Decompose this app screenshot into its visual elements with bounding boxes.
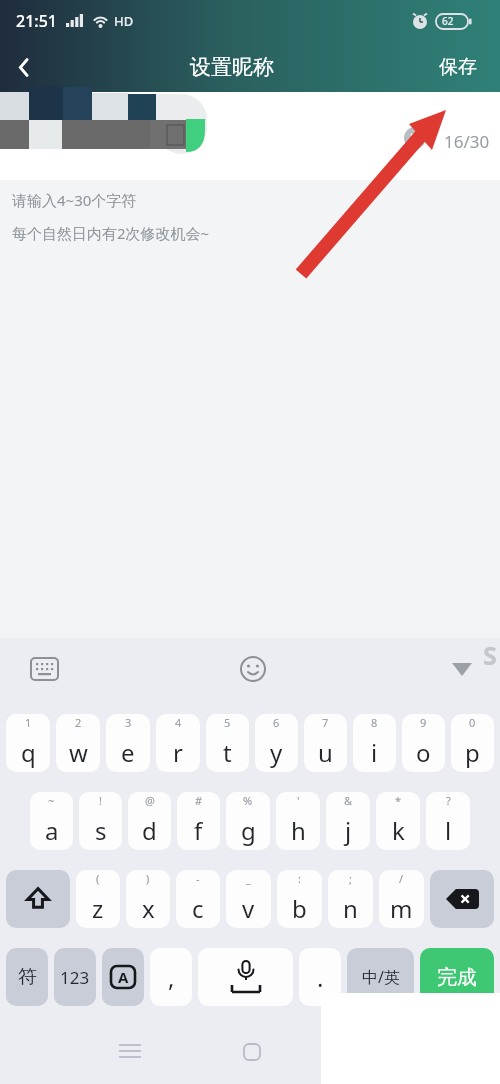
staticText: s (95, 814, 107, 847)
staticText: ? (446, 793, 451, 808)
button[interactable]: ! (79, 792, 122, 850)
button[interactable]: * (376, 792, 420, 850)
staticText: ' (297, 793, 300, 808)
staticText: 符 (18, 965, 37, 989)
staticText: 21:51 (16, 10, 57, 32)
button[interactable]: ? (426, 792, 470, 850)
button[interactable]: 3 (106, 714, 150, 772)
staticText: ) (146, 871, 150, 886)
staticText: 4 (175, 715, 182, 730)
staticText: 完成 (437, 965, 477, 990)
staticText: 每个自然日内有2次修改机会~ (12, 223, 210, 243)
button[interactable]: 7 (304, 714, 347, 772)
staticText: 保存 (439, 55, 477, 79)
button[interactable]: 完成 (420, 948, 494, 1006)
button[interactable] (430, 870, 494, 928)
staticText: A (118, 967, 129, 987)
staticText: 6 (273, 715, 280, 730)
staticText: z (92, 892, 104, 925)
staticText: * (395, 793, 402, 808)
staticText: 123 (60, 966, 90, 989)
button[interactable] (6, 870, 70, 928)
staticText: 5 (224, 715, 231, 730)
button[interactable]: 9 (402, 714, 445, 772)
button[interactable]: , (150, 948, 192, 1006)
button[interactable]: - (176, 870, 220, 928)
staticText: b (292, 892, 307, 925)
button[interactable]: 中/英 (347, 948, 414, 1006)
staticText: - (196, 871, 200, 886)
staticText: 62 (442, 14, 454, 28)
button[interactable]: ; (328, 870, 373, 928)
button[interactable] (404, 127, 426, 149)
staticText: x (142, 892, 155, 925)
button[interactable]: A (102, 948, 144, 1006)
button[interactable] (442, 649, 482, 689)
button[interactable]: 4 (156, 714, 200, 772)
button[interactable] (0, 43, 48, 91)
staticText: 1 (25, 715, 32, 730)
staticText: o (416, 736, 431, 769)
button[interactable]: 符 (6, 948, 48, 1006)
staticText: @ (145, 793, 155, 808)
staticText: a (45, 814, 59, 847)
button[interactable]: 0 (451, 714, 494, 772)
staticText: ; (349, 871, 352, 886)
staticText: h (291, 814, 306, 847)
staticText: n (343, 892, 358, 925)
button[interactable]: 1 (6, 714, 50, 772)
button[interactable]: / (379, 870, 424, 928)
staticText: 2 (75, 715, 82, 730)
staticText: r (173, 736, 183, 769)
staticText: f (194, 814, 203, 847)
button[interactable]: 6 (255, 714, 298, 772)
button[interactable]: ~ (30, 792, 73, 850)
staticText: ~ (48, 793, 55, 808)
button[interactable] (198, 948, 293, 1006)
staticText: 中/英 (362, 966, 400, 988)
button[interactable]: _ (226, 870, 271, 928)
button[interactable]: 5 (206, 714, 249, 772)
staticText: e (121, 736, 135, 769)
staticText: ! (99, 793, 102, 808)
button[interactable]: & (326, 792, 370, 850)
staticText: t (223, 736, 232, 769)
button[interactable]: % (226, 792, 270, 850)
button[interactable] (233, 649, 273, 689)
staticText: 设置昵称 (190, 54, 274, 80)
staticText: 9 (420, 715, 427, 730)
staticText: HD (114, 12, 134, 30)
button[interactable]: ) (126, 870, 170, 928)
staticText: 0 (469, 715, 476, 730)
button[interactable]: ' (276, 792, 320, 850)
button[interactable]: 2 (56, 714, 100, 772)
button[interactable]: @ (128, 792, 171, 850)
staticText: u (318, 736, 333, 769)
staticText: d (142, 814, 157, 847)
button[interactable]: ( (76, 870, 120, 928)
button[interactable] (118, 1043, 142, 1061)
staticText: g (241, 814, 256, 847)
button[interactable] (24, 649, 64, 689)
button[interactable]: # (177, 792, 220, 850)
button[interactable]: 8 (353, 714, 396, 772)
staticText: v (242, 892, 255, 925)
staticText: c (192, 892, 204, 925)
staticText: m (390, 892, 413, 925)
staticText: : (298, 871, 301, 886)
staticText: 3 (125, 715, 132, 730)
button[interactable]: . (299, 948, 341, 1006)
button[interactable]: 123 (54, 948, 96, 1006)
staticText: p (465, 736, 480, 769)
staticText: q (21, 736, 36, 769)
staticText: ( (96, 871, 100, 886)
staticText: % (243, 793, 253, 808)
staticText: l (445, 814, 452, 847)
staticText: k (392, 814, 405, 847)
staticText: _ (246, 871, 251, 886)
button[interactable]: 保存 (416, 42, 500, 92)
staticText: , (168, 961, 175, 994)
button[interactable]: : (277, 870, 322, 928)
button[interactable] (243, 1043, 261, 1061)
staticText: y (270, 736, 283, 769)
